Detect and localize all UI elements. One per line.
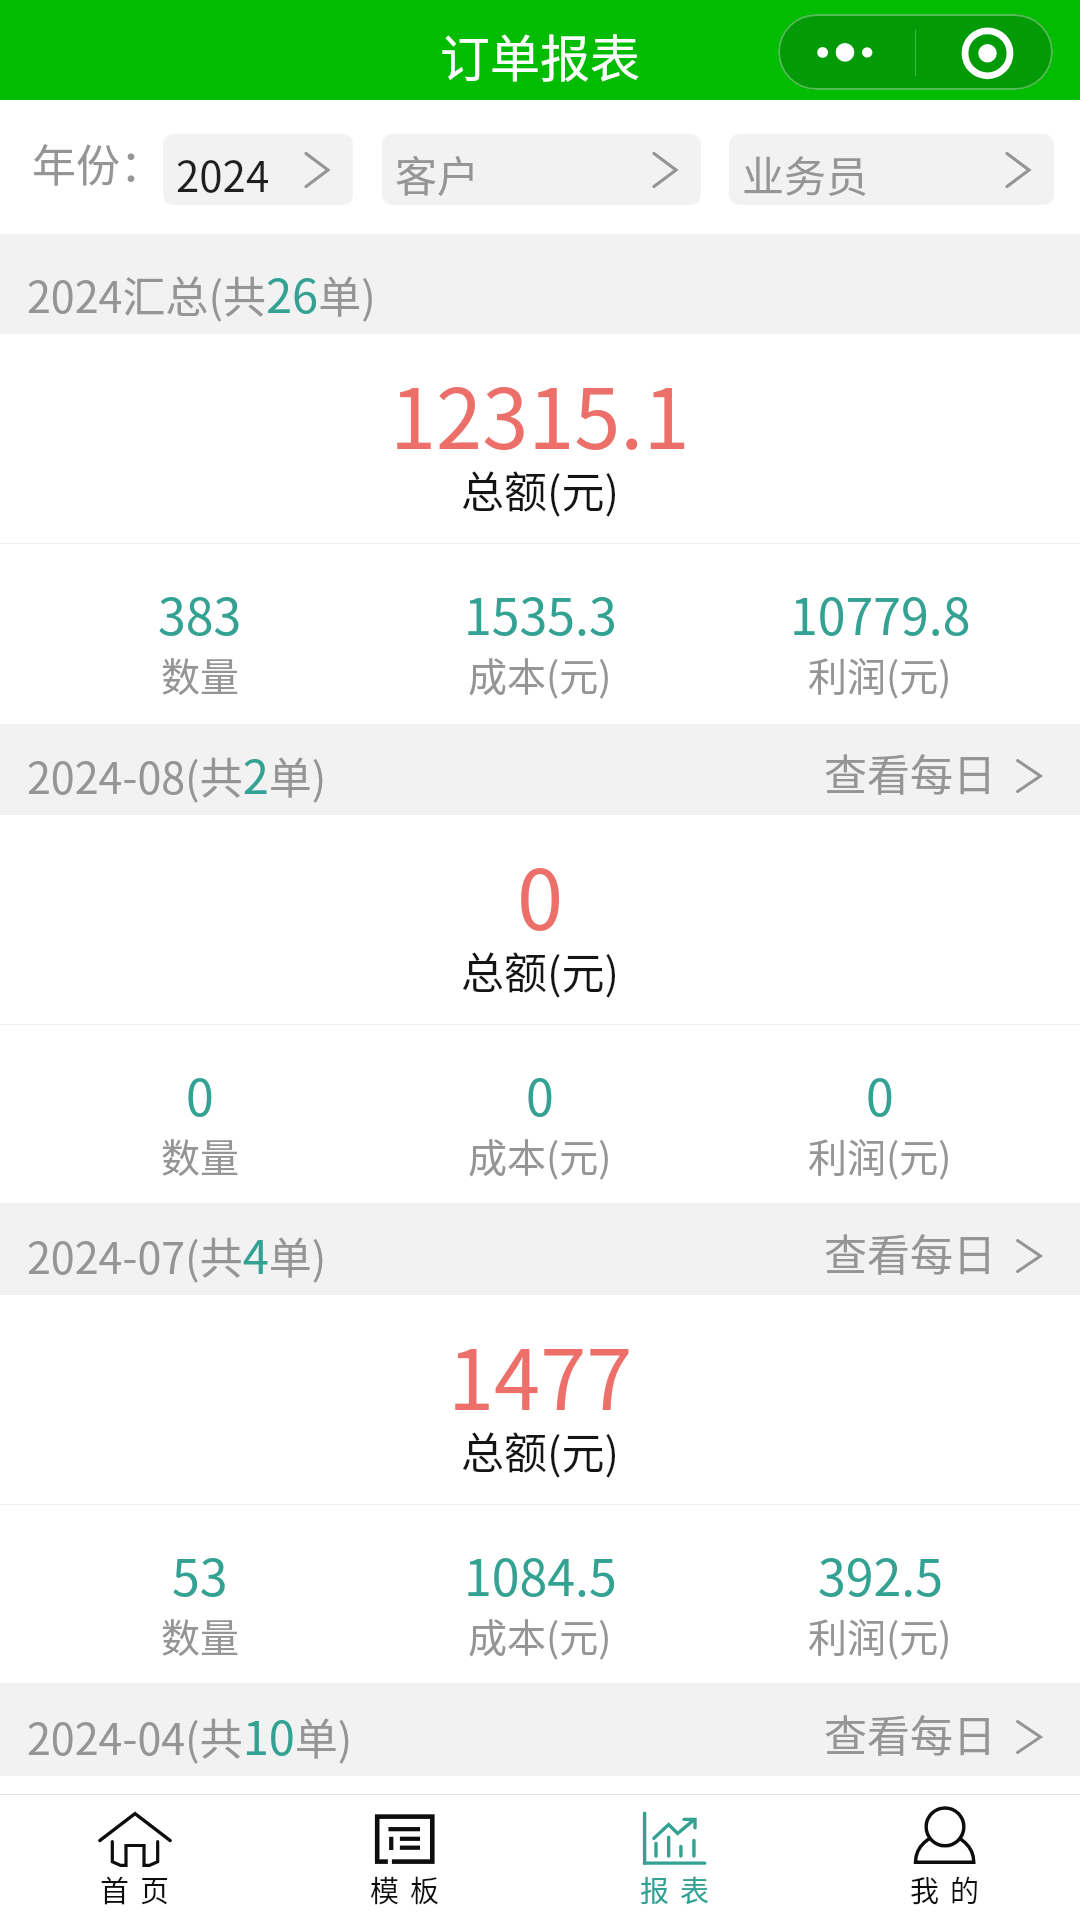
button[interactable]: 业务员 [729,134,1054,205]
button[interactable]: Close mini program [915,14,1053,90]
button[interactable]: 报表 [540,1795,810,1920]
staticText: 成本(元) [468,646,612,702]
staticText: 12315.1 [390,353,690,473]
staticText: 10779.8 [790,577,971,649]
staticText: 0 [866,1058,894,1130]
staticText: 1084.5 [464,1538,617,1610]
staticText: 2024-07(共4单) [27,1219,327,1287]
staticText: 数量 [161,1607,240,1663]
staticText: 总额(元) [461,939,620,1001]
button[interactable]: 我的 [810,1795,1080,1920]
button[interactable]: 2024-07(共4单) [0,1203,1080,1295]
button[interactable]: 2024-08(共2单) [0,724,1080,815]
staticText: 我的 [910,1868,991,1910]
button[interactable]: 客户 [382,134,701,205]
staticText: 1477 [448,1314,633,1434]
staticText: 模板 [370,1868,451,1910]
staticText: 年份： [32,131,164,195]
staticText: 2024汇总(共26单) [27,258,376,326]
staticText: 报表 [640,1868,721,1910]
staticText: 客户 [395,143,480,204]
staticText: 1535.3 [464,577,617,649]
staticText: 利润(元) [808,1607,952,1663]
staticText: 2024-04(共10单) [27,1700,353,1768]
staticText: 总额(元) [461,1419,620,1481]
staticText: 成本(元) [468,1127,612,1183]
staticText: 0 [517,834,564,954]
button[interactable]: 模板 [270,1795,540,1920]
button[interactable]: 2024 [163,134,353,205]
staticText: 利润(元) [808,1127,952,1183]
staticText: 0 [526,1058,554,1130]
staticText: 2024-08(共2单) [27,739,327,807]
staticText: 392.5 [818,1538,943,1610]
staticText: 成本(元) [468,1607,612,1663]
staticText: 查看每日 [824,741,996,803]
staticText: 首页 [100,1868,181,1910]
staticText: 0 [186,1058,214,1130]
staticText: 查看每日 [824,1702,996,1764]
button[interactable]: 2024-04(共10单) [0,1683,1080,1776]
button[interactable]: More options [778,14,915,90]
staticText: 2024 [176,143,270,204]
staticText: 订单报表 [440,19,640,91]
staticText: 383 [158,577,242,649]
staticText: 53 [172,1538,228,1610]
staticText: 数量 [161,646,240,702]
staticText: 业务员 [742,143,869,204]
button[interactable]: 首页 [0,1795,270,1920]
staticText: 查看每日 [824,1221,996,1283]
staticText: 利润(元) [808,646,952,702]
staticText: 总额(元) [461,458,620,520]
staticText: 数量 [161,1127,240,1183]
